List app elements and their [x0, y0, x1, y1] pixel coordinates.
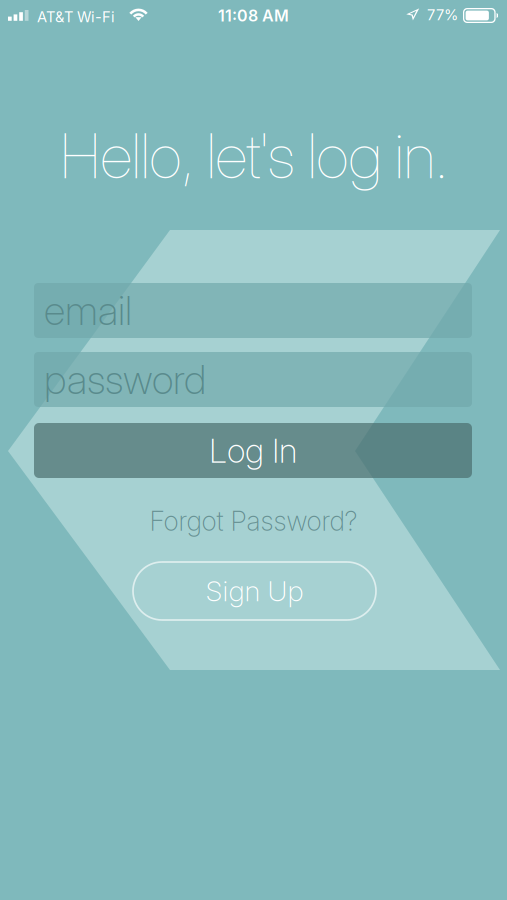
button[interactable]: password	[34, 352, 472, 407]
staticText: Log In	[209, 430, 297, 471]
button[interactable]: Log In	[34, 423, 472, 478]
staticText: Sign Up	[205, 574, 303, 608]
button[interactable]: Sign Up	[133, 562, 376, 620]
button[interactable]: Forgot Password?	[123, 503, 383, 539]
staticText: Forgot Password?	[149, 505, 357, 537]
staticText: Hello, let's log in.	[59, 119, 447, 193]
staticText: 11:08 AM	[218, 6, 289, 25]
staticText: email	[44, 286, 132, 335]
staticText: AT&T Wi-Fi	[37, 8, 115, 26]
staticText: 77%	[427, 6, 458, 24]
button[interactable]: email	[34, 283, 472, 338]
staticText: password	[44, 355, 206, 404]
